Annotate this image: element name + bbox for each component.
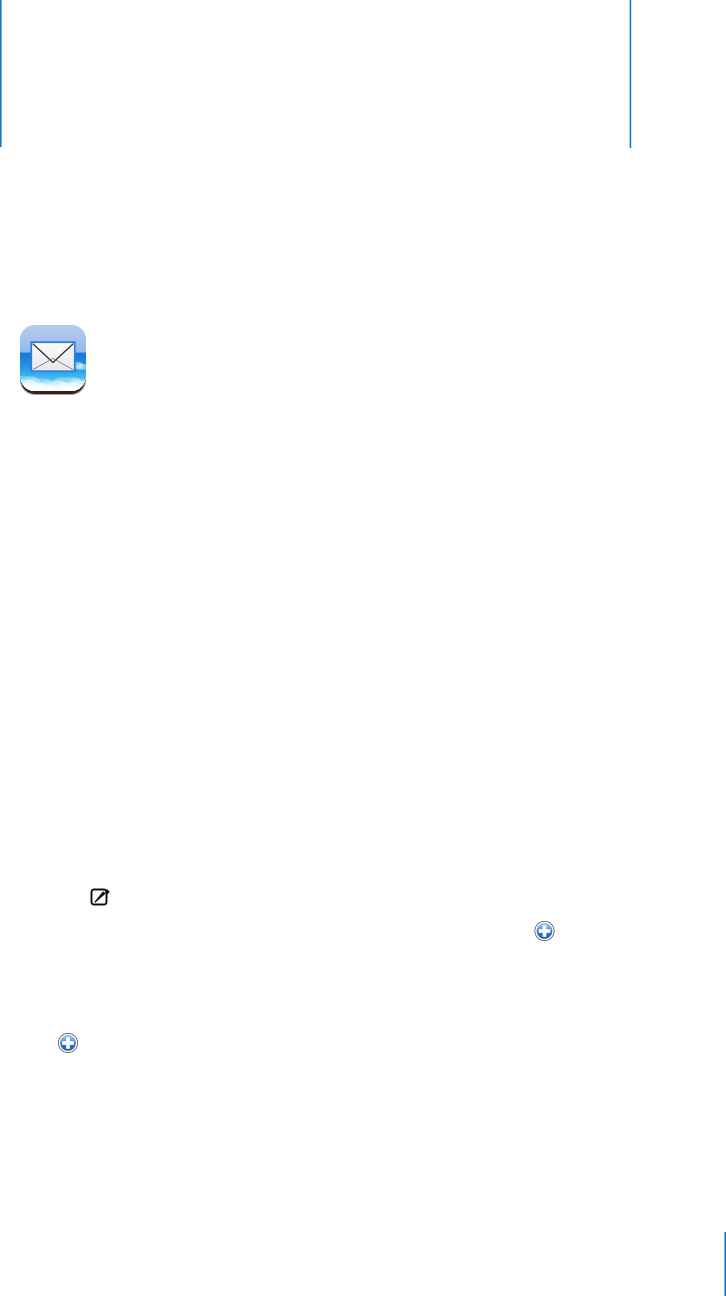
button[interactable]: Compose [91, 888, 109, 905]
button[interactable]: Add [534, 921, 554, 941]
button[interactable]: Add [58, 1033, 78, 1053]
button[interactable]: Mail [20, 325, 86, 395]
